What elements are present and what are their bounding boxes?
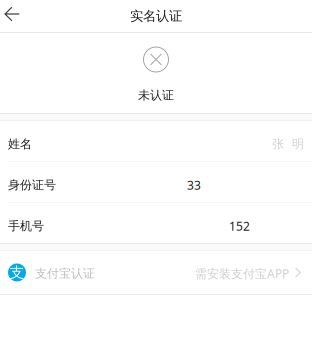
button[interactable]: 支 — [0, 251, 312, 294]
button[interactable]: 手机号 — [0, 203, 312, 243]
staticText: 33 — [187, 177, 201, 193]
staticText: 152 — [229, 218, 250, 234]
staticText: 手机号 — [8, 219, 44, 233]
staticText: 需安装支付宝APP — [195, 265, 289, 281]
staticText: 实名认证 — [130, 8, 182, 24]
staticText: 支付宝认证 — [35, 266, 95, 281]
button[interactable]: Back — [0, 0, 30, 32]
staticText: 支 — [9, 263, 24, 281]
staticText: 张 明 — [272, 137, 304, 151]
button[interactable]: 身份证号 — [0, 162, 312, 202]
staticText: 姓名 — [8, 137, 32, 151]
staticText: 身份证号 — [8, 178, 56, 192]
staticText: 未认证 — [138, 88, 174, 103]
button[interactable]: 姓名 — [0, 121, 312, 161]
